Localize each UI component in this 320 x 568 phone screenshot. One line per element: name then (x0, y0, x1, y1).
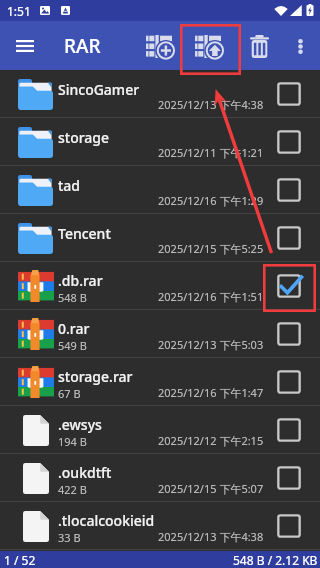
staticText: 67 B (58, 386, 81, 401)
staticText: 1:51 (7, 3, 31, 19)
button[interactable]: Select storage.rar (275, 368, 303, 396)
button[interactable]: Select SincoGamer (275, 80, 303, 108)
staticText: 2025/12/11 下午1:21 (158, 145, 264, 160)
button[interactable]: Select .tlocalcookieid (275, 512, 303, 540)
staticText: 2025/12/15 下午5:07 (158, 481, 264, 496)
staticText: 1 / 52 (4, 552, 36, 568)
button[interactable]: .ewsys (0, 406, 320, 454)
button[interactable]: storage.rar (0, 358, 320, 406)
button[interactable]: Select 0.rar (275, 320, 303, 348)
staticText: 422 B (58, 482, 87, 497)
staticText: RAR (64, 33, 101, 59)
staticText: 548 B (58, 290, 87, 305)
button[interactable]: Select Tencent (275, 224, 303, 252)
button[interactable]: .tlocalcookieid (0, 502, 320, 550)
staticText: 2025/12/13 下午5:03 (158, 337, 264, 352)
staticText: 2025/12/16 下午1:29 (158, 193, 264, 208)
staticText: 33 B (58, 530, 81, 545)
button[interactable]: More options (282, 28, 318, 64)
button[interactable]: storage (0, 118, 320, 166)
button[interactable]: Select .db.rar (275, 272, 303, 300)
button[interactable]: Select .oukdtft (275, 464, 303, 492)
staticText: .db.rar (58, 271, 103, 290)
button[interactable]: Add to archive (136, 23, 182, 69)
staticText: Tencent (58, 224, 111, 243)
button[interactable]: .db.rar (0, 262, 320, 310)
button[interactable]: tad (0, 166, 320, 214)
button[interactable]: Extract archive (185, 23, 231, 69)
button[interactable]: SincoGamer (0, 70, 320, 118)
staticText: 549 B (58, 338, 87, 353)
staticText: 0.rar (58, 319, 90, 338)
button[interactable]: Select tad (275, 176, 303, 204)
staticText: storage.rar (58, 367, 133, 386)
button[interactable]: .oukdtft (0, 454, 320, 502)
staticText: 2025/12/13 下午4:38 (158, 529, 264, 544)
button[interactable]: 0.rar (0, 310, 320, 358)
staticText: 2025/12/16 下午1:47 (158, 385, 264, 400)
staticText: .tlocalcookieid (58, 511, 155, 530)
staticText: 2025/12/15 下午5:25 (158, 241, 264, 256)
staticText: .oukdtft (58, 463, 112, 482)
button[interactable]: Tencent (0, 214, 320, 262)
staticText: 194 B (58, 434, 87, 449)
staticText: 2025/12/16 下午1:51 (158, 289, 264, 304)
staticText: storage (58, 128, 110, 147)
staticText: .ewsys (58, 415, 102, 434)
staticText: 2025/12/13 下午4:38 (158, 97, 264, 112)
button[interactable]: Select .ewsys (275, 416, 303, 444)
button[interactable]: Delete (238, 25, 280, 67)
staticText: 2025/12/12 下午2:15 (158, 433, 264, 448)
staticText: tad (58, 176, 81, 195)
staticText: SincoGamer (58, 80, 140, 99)
staticText: 548 B / 2.12 KB (233, 552, 318, 568)
button[interactable]: Select storage (275, 128, 303, 156)
button[interactable]: Menu (8, 32, 41, 60)
